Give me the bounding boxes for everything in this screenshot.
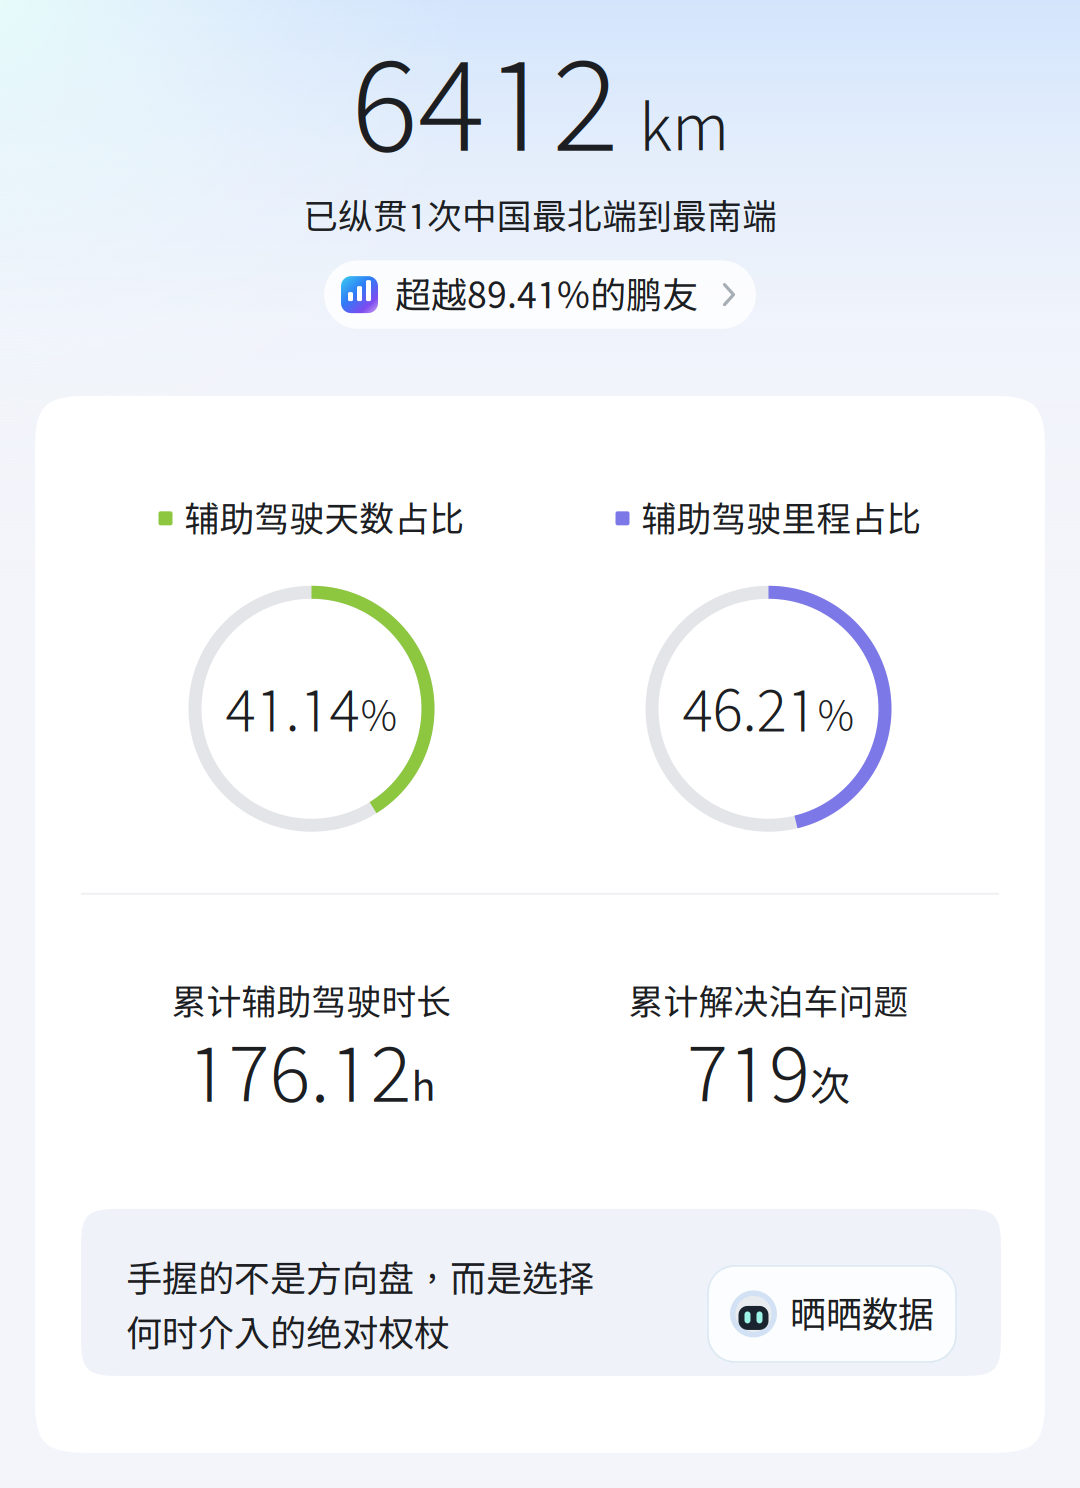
button[interactable]: 超越89.41%的鹏友 (324, 260, 756, 329)
staticText: 辅助驾驶天数占比 (184, 498, 464, 539)
staticText: % (817, 690, 854, 739)
staticText: 176.12 (187, 1026, 411, 1117)
button[interactable]: 晒晒数据 (708, 1266, 956, 1362)
staticText: 何时介入的绝对权杖 (126, 1311, 450, 1354)
staticText: 719 (687, 1026, 810, 1117)
staticText: 辅助驾驶里程占比 (641, 498, 921, 539)
staticText: 手握的不是方向盘，而是选择 (126, 1257, 594, 1299)
staticText: 累计辅助驾驶时长 (171, 981, 451, 1022)
staticText: h (411, 1062, 435, 1109)
staticText: 已纵贯1次中国最北端到最南端 (303, 195, 777, 236)
staticText: 累计解决泊车问题 (628, 981, 908, 1022)
staticText: 晒晒数据 (790, 1293, 934, 1335)
staticText: % (360, 690, 397, 739)
staticText: 超越89.41%的鹏友 (395, 273, 698, 316)
staticText: km (639, 88, 729, 163)
staticText: 次 (810, 1062, 850, 1109)
staticText: 6412 (351, 27, 619, 176)
staticText: 41.14 (225, 675, 359, 743)
staticText: 46.21 (682, 675, 816, 743)
